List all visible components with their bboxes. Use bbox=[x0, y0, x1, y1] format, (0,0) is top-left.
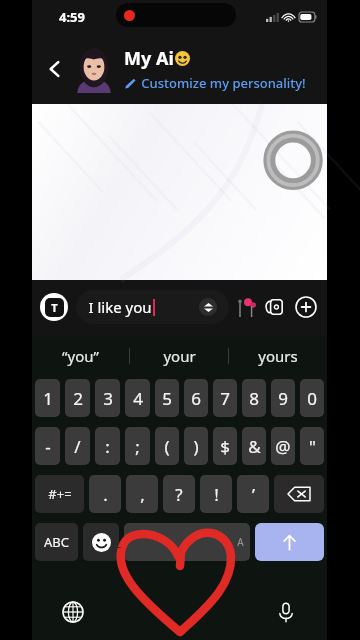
button[interactable]: More bbox=[293, 294, 319, 320]
button[interactable]: ’ bbox=[237, 475, 269, 513]
button[interactable]: $ bbox=[213, 427, 237, 465]
button[interactable]: your bbox=[130, 337, 228, 375]
button[interactable]: / bbox=[65, 427, 90, 465]
button[interactable]: #+= bbox=[35, 475, 84, 513]
button[interactable]: 1 bbox=[35, 379, 60, 417]
button[interactable]: Expand bbox=[199, 298, 217, 316]
staticText: ! bbox=[214, 483, 219, 506]
button[interactable]: Customize my personality! bbox=[124, 74, 306, 92]
button[interactable]: , bbox=[126, 475, 158, 513]
button[interactable]: 3 bbox=[95, 379, 120, 417]
button[interactable]: ABC bbox=[35, 523, 78, 561]
button[interactable]: ( bbox=[155, 427, 179, 465]
button[interactable]: 5 bbox=[155, 379, 179, 417]
staticText: ’ bbox=[252, 483, 255, 506]
button[interactable]: 6 bbox=[184, 379, 208, 417]
staticText: . bbox=[103, 483, 108, 506]
button[interactable]: Backspace bbox=[274, 475, 324, 513]
staticText: ; bbox=[135, 435, 140, 458]
staticText: 5 bbox=[162, 387, 172, 410]
button[interactable]: Memories bbox=[263, 295, 287, 319]
button[interactable]: Change keyboard bbox=[58, 597, 88, 627]
staticText: 4:59 bbox=[59, 8, 85, 26]
button[interactable]: & bbox=[242, 427, 266, 465]
button[interactable]: " bbox=[300, 427, 324, 465]
button[interactable]: : bbox=[95, 427, 120, 465]
staticText: My Ai bbox=[124, 46, 174, 71]
button[interactable]: 4 bbox=[125, 379, 150, 417]
button[interactable]: 9 bbox=[271, 379, 295, 417]
staticText: #+= bbox=[48, 485, 72, 503]
staticText: I like you bbox=[88, 297, 152, 317]
button[interactable]: Space bbox=[124, 523, 250, 561]
staticText: 3 bbox=[103, 387, 113, 410]
button[interactable]: Send bbox=[255, 523, 324, 561]
button[interactable]: 2 bbox=[65, 379, 90, 417]
button[interactable]: Text style bbox=[40, 293, 68, 321]
staticText: A bbox=[237, 535, 244, 549]
staticText: 4 bbox=[133, 387, 143, 410]
staticText: " bbox=[309, 435, 316, 458]
staticText: 7 bbox=[220, 387, 230, 410]
button[interactable]: 7 bbox=[213, 379, 237, 417]
button[interactable]: “you” bbox=[32, 337, 129, 375]
staticText: T bbox=[51, 300, 58, 315]
staticText: 1 bbox=[43, 387, 53, 410]
staticText: - bbox=[45, 435, 51, 458]
staticText: 6 bbox=[191, 387, 201, 410]
staticText: 8 bbox=[249, 387, 259, 410]
staticText: your bbox=[163, 346, 196, 366]
button[interactable]: Voice input bbox=[271, 597, 301, 627]
staticText: ? bbox=[175, 483, 183, 506]
button[interactable]: I like you bbox=[76, 290, 229, 324]
staticText: ) bbox=[193, 435, 199, 458]
staticText: Customize my personality! bbox=[141, 74, 306, 92]
staticText: 2 bbox=[73, 387, 83, 410]
button[interactable]: ; bbox=[125, 427, 150, 465]
staticText: yours bbox=[258, 346, 298, 366]
button[interactable]: 0 bbox=[300, 379, 324, 417]
staticText: ABC bbox=[44, 533, 69, 551]
button[interactable]: ) bbox=[184, 427, 208, 465]
button[interactable]: 8 bbox=[242, 379, 266, 417]
staticText: : bbox=[105, 435, 110, 458]
button[interactable]: Stickers bbox=[235, 296, 257, 318]
button[interactable]: Back bbox=[38, 52, 72, 86]
staticText: / bbox=[74, 435, 81, 458]
staticText: , bbox=[140, 483, 145, 506]
staticText: “you” bbox=[62, 346, 99, 366]
staticText: & bbox=[248, 435, 261, 458]
button[interactable]: . bbox=[89, 475, 121, 513]
staticText: 0 bbox=[307, 387, 317, 410]
staticText: $ bbox=[220, 435, 230, 458]
button[interactable]: Emoji bbox=[83, 523, 119, 561]
staticText: ( bbox=[164, 435, 170, 458]
button[interactable]: @ bbox=[271, 427, 295, 465]
staticText: 9 bbox=[278, 387, 288, 410]
button[interactable]: ? bbox=[163, 475, 195, 513]
button[interactable]: ! bbox=[200, 475, 232, 513]
button[interactable]: yours bbox=[229, 337, 327, 375]
staticText: @ bbox=[275, 435, 291, 458]
button[interactable]: - bbox=[35, 427, 60, 465]
